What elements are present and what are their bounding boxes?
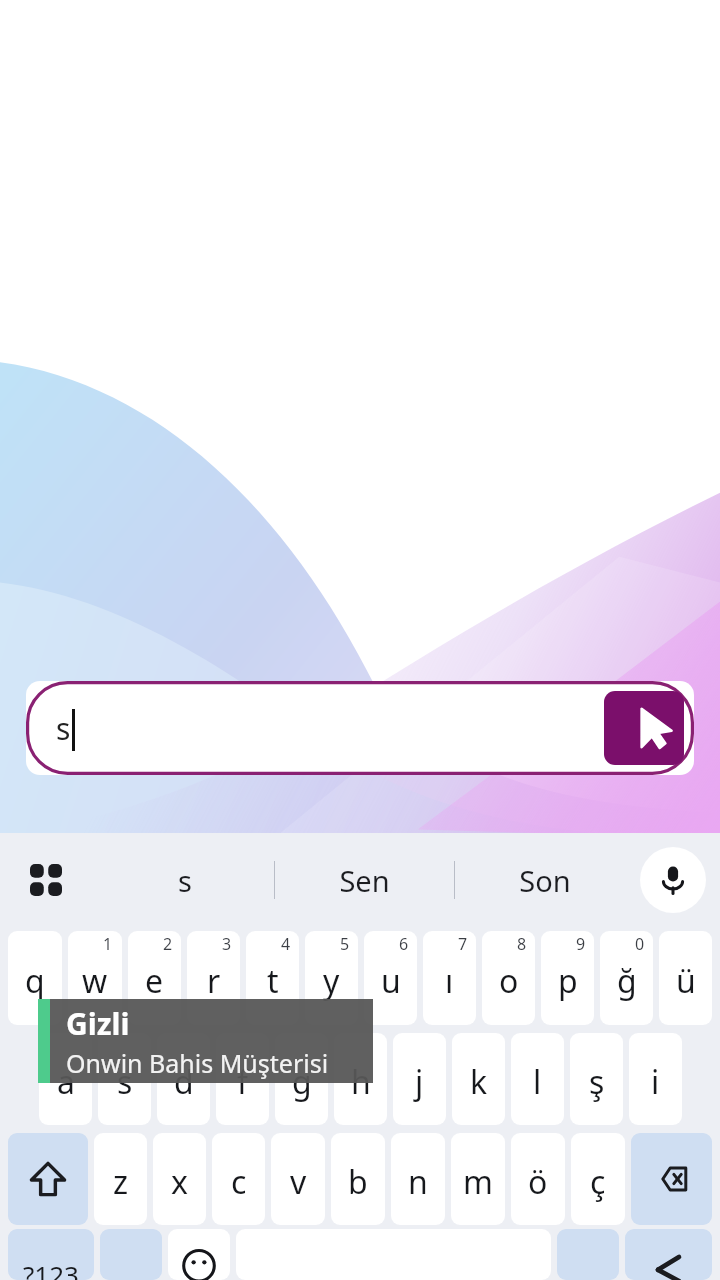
staticText: j xyxy=(415,1060,424,1104)
staticText: Gizli xyxy=(66,1003,130,1044)
staticText: h xyxy=(351,1060,371,1104)
button[interactable]: c xyxy=(212,1133,265,1225)
staticText: n xyxy=(408,1160,428,1204)
button[interactable]: ş xyxy=(570,1033,623,1125)
staticText: r xyxy=(207,959,221,1003)
button[interactable]: ç xyxy=(571,1133,625,1225)
staticText: p xyxy=(558,959,578,1003)
button[interactable]: y xyxy=(305,931,358,1025)
staticText: 6 xyxy=(399,933,409,955)
staticText: 5 xyxy=(340,933,350,955)
button[interactable] xyxy=(100,1229,162,1280)
button[interactable]: a xyxy=(39,1033,92,1125)
staticText: f xyxy=(237,1060,249,1104)
button[interactable]: k xyxy=(452,1033,505,1125)
staticText: ı xyxy=(445,959,454,1003)
staticText: x xyxy=(171,1160,188,1204)
button[interactable]: s xyxy=(26,681,694,775)
button[interactable]: p xyxy=(541,931,594,1025)
staticText: 3 xyxy=(222,933,232,955)
staticText: Son xyxy=(519,861,571,900)
staticText: t xyxy=(267,959,279,1003)
staticText: y xyxy=(323,959,340,1003)
staticText: z xyxy=(113,1160,129,1204)
staticText: ü xyxy=(676,959,696,1003)
staticText: v xyxy=(290,1160,307,1204)
staticText: i xyxy=(651,1060,660,1104)
button[interactable]: Sen xyxy=(275,833,454,927)
staticText: ğ xyxy=(617,959,637,1003)
staticText: 7 xyxy=(458,933,468,955)
button[interactable]: ı xyxy=(423,931,476,1025)
button[interactable]: Sesle yaz xyxy=(640,847,706,913)
button[interactable]: u xyxy=(364,931,417,1025)
staticText: s xyxy=(56,708,71,749)
button[interactable]: t xyxy=(246,931,299,1025)
button[interactable]: ü xyxy=(659,931,712,1025)
button[interactable]: e xyxy=(128,931,181,1025)
button[interactable]: j xyxy=(393,1033,446,1125)
staticText: k xyxy=(470,1060,488,1104)
button[interactable]: s xyxy=(96,833,274,927)
button[interactable]: s xyxy=(98,1033,151,1125)
button[interactable]: Uygulamalar xyxy=(12,846,80,914)
button[interactable] xyxy=(557,1229,619,1280)
button[interactable]: g xyxy=(275,1033,328,1125)
staticText: u xyxy=(381,959,401,1003)
staticText: 8 xyxy=(517,933,527,955)
button[interactable]: ?123 xyxy=(8,1229,94,1280)
staticText: g xyxy=(292,1060,312,1104)
staticText: 1 xyxy=(103,933,113,955)
button[interactable]: h xyxy=(334,1033,387,1125)
button[interactable] xyxy=(625,1229,712,1280)
staticText: 0 xyxy=(635,933,645,955)
staticText: q xyxy=(25,959,45,1003)
staticText: e xyxy=(145,959,164,1003)
staticText: ?123 xyxy=(23,1257,79,1280)
staticText: m xyxy=(463,1160,493,1204)
button[interactable]: q xyxy=(8,931,62,1025)
button[interactable]: r xyxy=(187,931,240,1025)
staticText: l xyxy=(533,1060,542,1104)
button[interactable]: w xyxy=(68,931,122,1025)
button[interactable]: Ara xyxy=(604,691,684,765)
button[interactable]: m xyxy=(451,1133,505,1225)
button[interactable]: Sil xyxy=(631,1133,712,1225)
staticText: w xyxy=(82,959,108,1003)
staticText: 4 xyxy=(281,933,291,955)
button[interactable]: d xyxy=(157,1033,210,1125)
staticText: o xyxy=(499,959,519,1003)
button[interactable] xyxy=(168,1229,230,1280)
button[interactable]: f xyxy=(216,1033,269,1125)
button[interactable]: Gizli xyxy=(38,999,373,1083)
button[interactable]: n xyxy=(391,1133,445,1225)
staticText: s xyxy=(178,861,192,900)
staticText: c xyxy=(231,1160,247,1204)
staticText: Sen xyxy=(339,861,390,900)
staticText: 9 xyxy=(576,933,586,955)
staticText: ç xyxy=(590,1160,606,1204)
button[interactable]: Shift xyxy=(8,1133,88,1225)
button[interactable]: b xyxy=(331,1133,385,1225)
button[interactable]: v xyxy=(271,1133,325,1225)
button[interactable]: x xyxy=(153,1133,206,1225)
staticText: s xyxy=(117,1060,133,1104)
button[interactable]: ğ xyxy=(600,931,653,1025)
staticText: b xyxy=(348,1160,368,1204)
button[interactable]: z xyxy=(94,1133,147,1225)
staticText: d xyxy=(174,1060,194,1104)
staticText: Onwin Bahis Müşterisi xyxy=(66,1046,329,1080)
button[interactable]: l xyxy=(511,1033,564,1125)
staticText: 2 xyxy=(163,933,173,955)
staticText: ö xyxy=(528,1160,548,1204)
button[interactable]: i xyxy=(629,1033,682,1125)
button[interactable]: Son xyxy=(455,833,634,927)
staticText: a xyxy=(57,1060,75,1104)
button[interactable]: ö xyxy=(511,1133,565,1225)
staticText: ş xyxy=(589,1060,605,1104)
button[interactable]: o xyxy=(482,931,535,1025)
